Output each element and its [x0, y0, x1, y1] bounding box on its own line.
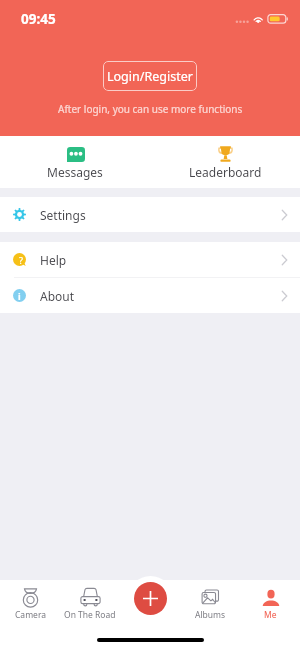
button[interactable]: Camera — [0, 583, 60, 625]
staticText: After login, you can use more functions — [58, 102, 243, 116]
staticText: Help — [40, 252, 67, 268]
button[interactable]: i — [0, 278, 300, 313]
button[interactable]: Me — [240, 583, 300, 625]
button[interactable]: Albums — [180, 583, 240, 625]
staticText: ? — [19, 254, 23, 266]
button[interactable]: ? — [0, 242, 300, 277]
staticText: Me — [264, 609, 277, 621]
staticText: About — [40, 288, 75, 304]
staticText: Settings — [40, 207, 86, 223]
button[interactable]: Leaderboard — [150, 136, 300, 188]
staticText: Login/Register — [107, 68, 193, 85]
staticText: 09:45 — [21, 10, 56, 28]
staticText: Messages — [47, 164, 103, 180]
staticText: Leaderboard — [189, 164, 262, 180]
button[interactable]: On The Road — [60, 583, 120, 625]
button[interactable]: Login/Register — [103, 61, 197, 91]
button[interactable]: Messages — [0, 136, 150, 188]
staticText: Camera — [15, 609, 46, 621]
staticText: On The Road — [64, 609, 116, 621]
button[interactable]: Settings — [0, 197, 300, 232]
button[interactable]: Add — [134, 582, 167, 615]
staticText: i — [18, 290, 21, 302]
staticText: Albums — [195, 609, 226, 621]
